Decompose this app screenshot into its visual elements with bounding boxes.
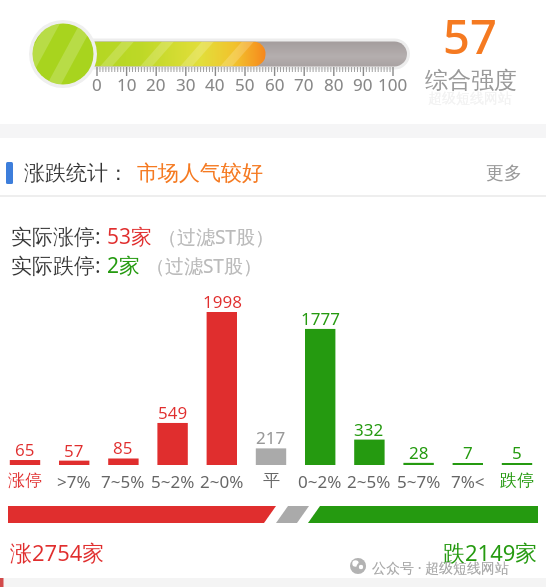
staticText: 2~5% (347, 470, 391, 493)
staticText: 30 (176, 73, 196, 96)
staticText: 100 (378, 73, 408, 96)
staticText: 涨2754家 (10, 537, 105, 567)
staticText: （过滤ST股） (153, 224, 274, 250)
staticText: 涨跌统计： (24, 160, 129, 186)
staticText: 65 (15, 438, 35, 461)
staticText: 5 (512, 441, 522, 464)
staticText: 53家 (107, 222, 153, 251)
staticText: 2家 (107, 251, 141, 280)
staticText: 60 (265, 73, 285, 96)
staticText: 7~5% (101, 470, 145, 493)
staticText: 90 (353, 73, 373, 96)
staticText: 10 (117, 73, 137, 96)
staticText: 更多 (486, 162, 522, 185)
staticText: 平 (263, 470, 280, 491)
staticText: 7%< (451, 470, 485, 493)
staticText: 70 (294, 73, 314, 96)
staticText: 市场人气较好 (137, 160, 263, 186)
staticText: 57 (64, 439, 84, 462)
staticText: 57 (443, 4, 497, 68)
staticText: 1998 (203, 290, 242, 313)
staticText: 7 (463, 441, 473, 464)
staticText: 85 (113, 436, 133, 459)
staticText: 5~7% (397, 470, 441, 493)
staticText: 跌停 (500, 470, 534, 491)
staticText: 5~2% (151, 470, 195, 493)
button[interactable]: 更多 (480, 162, 528, 185)
staticText: 实际涨停: (11, 222, 107, 251)
staticText: 332 (354, 418, 384, 441)
staticText: 80 (324, 73, 344, 96)
staticText: 公众号 · 超级短线网站 (372, 558, 510, 577)
staticText: 跌2149家 (443, 537, 538, 567)
staticText: >7% (57, 470, 91, 493)
staticText: 28 (409, 441, 429, 464)
staticText: 综合强度 (425, 66, 517, 95)
staticText: 0 (92, 73, 102, 96)
staticText: 1777 (301, 307, 340, 330)
staticText: 实际跌停: (11, 251, 107, 280)
staticText: （过滤ST股） (141, 253, 262, 279)
staticText: 40 (205, 73, 225, 96)
staticText: 50 (235, 73, 255, 96)
staticText: 217 (256, 426, 286, 449)
staticText: 20 (146, 73, 166, 96)
staticText: 549 (158, 401, 188, 424)
staticText: 0~2% (298, 470, 342, 493)
staticText: 涨停 (8, 470, 42, 491)
staticText: 2~0% (200, 470, 244, 493)
staticText: 超级短线网站 (428, 90, 512, 108)
